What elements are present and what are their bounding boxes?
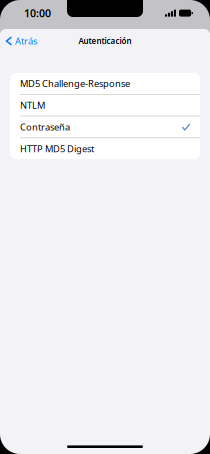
button[interactable]: NTLM <box>10 95 200 116</box>
button[interactable]: MD5 Challenge-Response <box>10 73 200 94</box>
staticText: NTLM <box>20 99 45 111</box>
button[interactable]: Contraseña <box>10 116 200 137</box>
button[interactable]: Atrás <box>0 30 45 52</box>
staticText: MD5 Challenge-Response <box>20 77 130 90</box>
button[interactable]: HTTP MD5 Digest <box>10 138 200 159</box>
staticText: 10:00 <box>24 6 51 20</box>
staticText: Contraseña <box>20 121 70 133</box>
staticText: Autenticación <box>78 36 131 46</box>
staticText: HTTP MD5 Digest <box>20 142 94 155</box>
staticText: Atrás <box>15 35 37 47</box>
